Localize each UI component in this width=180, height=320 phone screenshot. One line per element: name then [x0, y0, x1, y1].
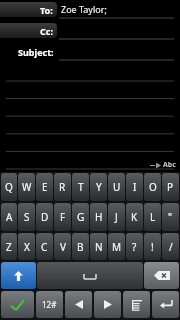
button[interactable]: Space	[37, 262, 143, 289]
staticText: S	[24, 210, 30, 224]
staticText: U	[113, 180, 121, 194]
staticText: F	[60, 210, 66, 224]
button[interactable]: P	[162, 173, 179, 201]
button[interactable]: T	[72, 173, 89, 201]
button[interactable]: Menu	[123, 291, 150, 318]
button[interactable]: ?	[126, 233, 143, 260]
staticText: R	[59, 180, 66, 194]
button[interactable]: B	[72, 233, 89, 260]
button[interactable]: !	[144, 233, 161, 260]
staticText: W	[22, 180, 32, 194]
staticText: Y	[96, 180, 102, 194]
staticText: Zoe Taylor;	[61, 3, 107, 15]
button[interactable]: Enter	[152, 291, 179, 318]
staticText: "	[168, 210, 173, 224]
staticText: G	[77, 210, 85, 224]
staticText: !	[151, 240, 154, 254]
button[interactable]: V	[54, 233, 71, 260]
staticText: To:	[40, 4, 53, 16]
staticText: O	[149, 180, 157, 194]
staticText: E	[42, 180, 48, 194]
staticText: Cc:	[40, 25, 53, 37]
button[interactable]: G	[72, 203, 89, 231]
button[interactable]: W	[18, 173, 35, 201]
button[interactable]: Cc:	[0, 23, 57, 38]
button[interactable]: Subject:	[0, 44, 57, 59]
staticText: Abc	[163, 160, 176, 170]
staticText: M	[112, 240, 122, 254]
button[interactable]: I	[126, 173, 143, 201]
staticText: Subject:	[18, 46, 54, 58]
staticText: Z	[6, 240, 12, 254]
button[interactable]: Backspace	[144, 262, 179, 289]
button[interactable]: Left	[65, 291, 92, 318]
staticText: X	[24, 240, 30, 254]
button[interactable]: C	[36, 233, 53, 260]
staticText: L	[150, 210, 156, 224]
staticText: H	[95, 210, 103, 224]
staticText: B	[77, 240, 84, 254]
button[interactable]: R	[54, 173, 71, 201]
button[interactable]: Shift	[1, 262, 36, 289]
button[interactable]: Y	[90, 173, 107, 201]
button[interactable]: K	[126, 203, 143, 231]
button[interactable]: Right	[94, 291, 121, 318]
staticText: T	[78, 180, 84, 194]
button[interactable]: Done	[1, 291, 34, 318]
staticText: Q	[5, 180, 13, 194]
staticText: C	[41, 240, 48, 254]
staticText: ?	[132, 240, 137, 254]
staticText: V	[60, 240, 66, 254]
button[interactable]: A	[1, 203, 17, 231]
button[interactable]: L	[144, 203, 161, 231]
staticText: J	[115, 210, 118, 224]
button[interactable]: D	[36, 203, 53, 231]
staticText: K	[131, 210, 138, 224]
staticText: N	[95, 240, 103, 254]
button[interactable]: Z	[1, 233, 17, 260]
button[interactable]: H	[90, 203, 107, 231]
button[interactable]: N	[90, 233, 107, 260]
staticText: D	[41, 210, 49, 224]
button[interactable]: /	[162, 233, 179, 260]
staticText: P	[167, 180, 174, 194]
button[interactable]: To:	[0, 2, 57, 17]
button[interactable]: Q	[1, 173, 17, 201]
button[interactable]: J	[108, 203, 125, 231]
button[interactable]: E	[36, 173, 53, 201]
button[interactable]: O	[144, 173, 161, 201]
staticText: A	[6, 210, 13, 224]
button[interactable]: U	[108, 173, 125, 201]
button[interactable]: S	[18, 203, 35, 231]
button[interactable]: "	[162, 203, 179, 231]
button[interactable]: 12#	[36, 291, 63, 318]
button[interactable]: M	[108, 233, 125, 260]
button[interactable]: F	[54, 203, 71, 231]
staticText: I	[133, 180, 137, 194]
staticText: 12#	[42, 299, 57, 310]
button[interactable]: X	[18, 233, 35, 260]
staticText: /	[169, 240, 173, 254]
